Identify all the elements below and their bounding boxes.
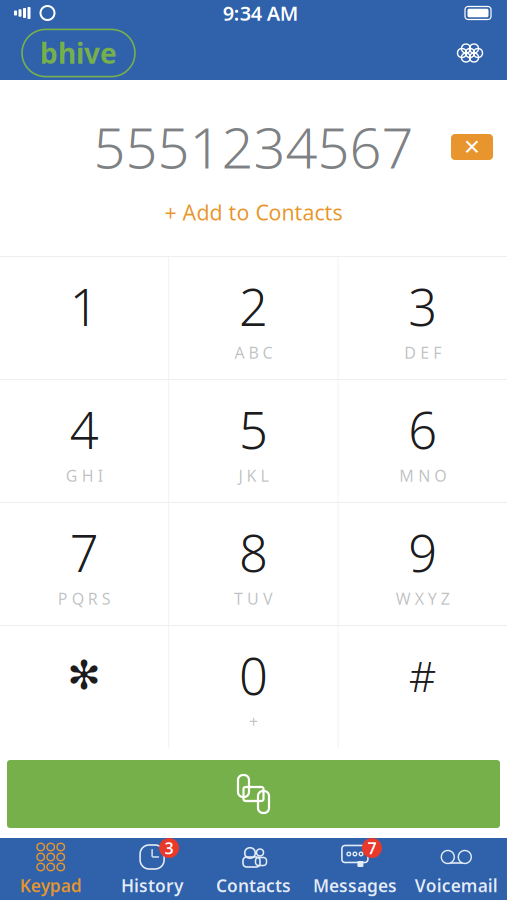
button[interactable]: Contacts <box>203 839 304 899</box>
staticText: bhive <box>40 34 117 72</box>
staticText: ✕ <box>463 135 481 159</box>
button[interactable]: 5 <box>169 380 338 502</box>
staticText: 4 <box>70 396 99 463</box>
button[interactable]: 4 <box>0 380 168 502</box>
staticText: 9 <box>408 519 437 586</box>
button[interactable]: 2 <box>169 257 338 379</box>
button[interactable]: Settings <box>455 39 507 67</box>
button[interactable]: Call <box>7 760 500 828</box>
button[interactable]: bhive <box>22 29 135 77</box>
staticText: 6 <box>408 396 437 463</box>
staticText: A B C <box>234 342 272 363</box>
staticText: 3 <box>408 273 437 340</box>
staticText: P Q R S <box>58 588 111 609</box>
button[interactable]: Keypad <box>0 839 101 899</box>
staticText: T U V <box>234 588 273 609</box>
button[interactable]: Delete <box>451 134 507 160</box>
staticText: Keypad <box>20 874 82 897</box>
button[interactable]: 3 <box>339 257 507 379</box>
staticText: 2 <box>239 273 268 340</box>
staticText: 0 <box>239 642 268 709</box>
button[interactable]: 0 <box>169 626 338 748</box>
staticText: Messages <box>313 874 397 897</box>
staticText: 5 <box>239 396 268 463</box>
staticText: + Add to Contacts <box>164 198 342 226</box>
button[interactable]: 6 <box>339 380 507 502</box>
staticText: 5551234567 <box>93 110 413 184</box>
button[interactable]: + Add to Contacts <box>154 184 352 226</box>
button[interactable]: ✻ <box>0 626 168 748</box>
button[interactable]: 9 <box>339 503 507 625</box>
staticText: D E F <box>404 342 441 363</box>
button[interactable]: 7 <box>304 839 406 899</box>
staticText: History <box>121 874 183 897</box>
staticText: W X Y Z <box>396 588 450 609</box>
staticText: G H I <box>66 465 103 486</box>
staticText: 8 <box>239 519 268 586</box>
staticText: # <box>409 647 437 704</box>
staticText: 3 <box>165 837 174 859</box>
staticText: Voicemail <box>415 874 498 897</box>
staticText: 9:34 AM <box>223 0 299 26</box>
staticText: Contacts <box>216 874 291 897</box>
staticText: J K L <box>238 465 268 486</box>
staticText: 7 <box>70 519 99 586</box>
staticText: ✻ <box>67 653 101 698</box>
staticText: 1 <box>70 273 99 340</box>
button[interactable]: 7 <box>0 503 168 625</box>
staticText: 7 <box>367 837 376 859</box>
button[interactable]: 1 <box>0 257 168 379</box>
button[interactable]: 3 <box>101 839 203 899</box>
staticText: M N O <box>399 465 446 486</box>
staticText: + <box>249 711 258 732</box>
button[interactable]: Voicemail <box>406 839 507 899</box>
button[interactable]: 8 <box>169 503 338 625</box>
button[interactable]: # <box>339 626 507 748</box>
